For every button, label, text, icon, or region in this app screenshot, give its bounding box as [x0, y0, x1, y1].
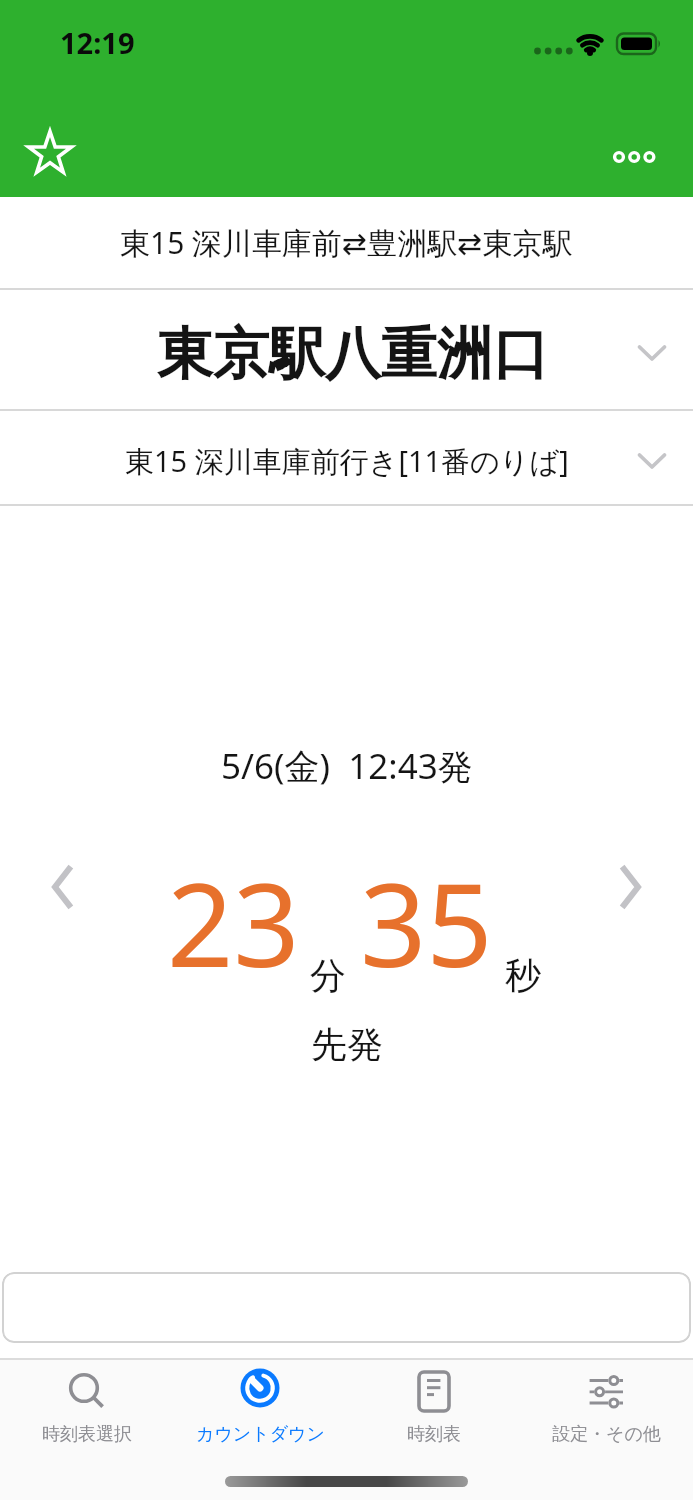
staticText: 分	[310, 953, 346, 998]
button[interactable]	[603, 140, 663, 176]
staticText: 35	[360, 843, 493, 1001]
button[interactable]	[38, 862, 88, 912]
button[interactable]	[605, 862, 655, 912]
staticText: 設定・その他	[552, 1423, 661, 1446]
button[interactable]: 東京駅八重洲口	[0, 290, 693, 409]
staticText: 時刻表選択	[42, 1423, 132, 1446]
staticText: カウントダウン	[196, 1423, 325, 1446]
staticText: 先発	[311, 1022, 383, 1067]
staticText: 5/6(金) 12:43発	[221, 742, 473, 790]
staticText: 秒	[505, 953, 541, 998]
button[interactable]: 時刻表選択	[0, 1366, 174, 1446]
staticText: 東15 深川車庫前⇄豊洲駅⇄東京駅	[120, 222, 573, 263]
staticText: 東京駅八重洲口	[157, 319, 549, 390]
staticText: 時刻表	[407, 1423, 461, 1446]
button[interactable]: カウントダウン	[174, 1366, 347, 1446]
staticText: 東15 深川車庫前行き[11番のりば]	[125, 441, 569, 481]
button[interactable]: 設定・その他	[520, 1366, 693, 1446]
staticText: 12:19	[60, 23, 135, 62]
button[interactable]	[20, 124, 80, 184]
button[interactable]: 東15 深川車庫前行き[11番のりば]	[0, 411, 693, 504]
button[interactable]: 時刻表	[347, 1366, 520, 1446]
staticText: 23	[167, 843, 300, 1001]
button[interactable]: 東15 深川車庫前⇄豊洲駅⇄東京駅	[0, 197, 693, 288]
